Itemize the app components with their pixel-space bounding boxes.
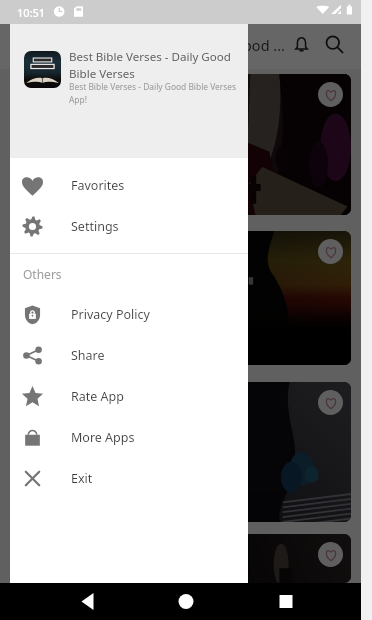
staticText: More Apps <box>71 429 135 446</box>
button[interactable]: Notifications <box>283 26 320 63</box>
button[interactable]: Open navigation drawer <box>6 28 44 66</box>
button[interactable]: Rate App <box>10 376 248 417</box>
button[interactable]: Share <box>10 335 248 376</box>
staticText: Best Bible Verses - Daily Good ... <box>67 35 285 55</box>
staticText: Share <box>71 347 105 364</box>
button[interactable]: Add to favorites <box>318 390 343 415</box>
button[interactable]: Add to favorites <box>10 231 351 365</box>
staticText: Best Bible Verses - Daily Good Bible Ver… <box>69 81 237 106</box>
button[interactable]: Add to favorites <box>318 542 343 567</box>
button[interactable]: Privacy Policy <box>10 294 248 335</box>
staticText: Exit <box>71 470 93 487</box>
button[interactable]: Settings <box>10 206 248 247</box>
button[interactable]: Add to favorites <box>10 382 351 522</box>
button[interactable]: Add to favorites <box>10 534 351 583</box>
button[interactable]: Add to favorites <box>318 82 343 107</box>
staticText: 10:51 <box>17 5 46 20</box>
staticText: Privacy Policy <box>71 306 150 323</box>
button[interactable]: More Apps <box>10 417 248 458</box>
staticText: Others <box>23 266 62 282</box>
button[interactable]: Add to favorites <box>10 74 351 215</box>
button[interactable]: Favorites <box>10 165 248 206</box>
button[interactable]: Add to favorites <box>318 239 343 264</box>
staticText: Rate App <box>71 388 124 405</box>
staticText: Best Bible Verses - Daily Good Bible Ver… <box>69 49 231 81</box>
button[interactable]: Exit <box>10 458 248 499</box>
button[interactable]: Search <box>316 26 353 63</box>
staticText: Favorites <box>71 177 125 194</box>
staticText: Settings <box>71 218 119 235</box>
